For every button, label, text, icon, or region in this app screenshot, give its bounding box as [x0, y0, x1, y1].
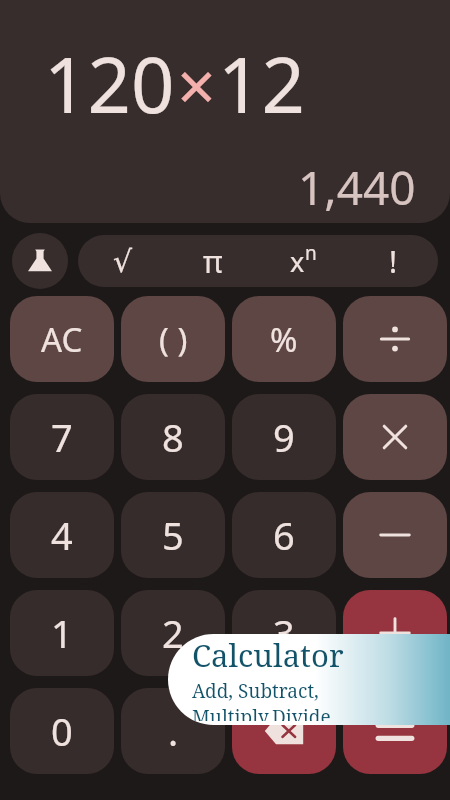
button[interactable]: Decimal point	[121, 688, 225, 774]
staticText: 12	[218, 32, 305, 136]
button[interactable]: 0	[10, 688, 114, 774]
staticText: !	[389, 241, 398, 282]
staticText: 2	[162, 607, 184, 659]
button[interactable]: Percent	[232, 296, 336, 382]
staticText: ( )	[159, 317, 188, 362]
staticText: 0	[51, 705, 73, 757]
button[interactable]: Power	[258, 235, 348, 287]
staticText: π	[203, 241, 223, 282]
button[interactable]: 2	[121, 590, 225, 676]
staticText: 1	[51, 607, 73, 659]
button[interactable]: Divide	[343, 296, 447, 382]
button[interactable]: Factorial	[348, 235, 438, 287]
button[interactable]: Parentheses	[121, 296, 225, 382]
staticText: .	[168, 705, 179, 757]
button[interactable]: Pi	[168, 235, 258, 287]
staticText: 4	[51, 509, 73, 561]
button[interactable]: 6	[232, 492, 336, 578]
staticText: 6	[273, 509, 295, 561]
staticText: 120	[44, 32, 175, 136]
button[interactable]: Multiply	[343, 394, 447, 480]
button[interactable]: 1	[10, 590, 114, 676]
button[interactable]: Backspace	[232, 688, 336, 774]
staticText: 7	[51, 411, 73, 463]
button[interactable]: All clear	[10, 296, 114, 382]
button[interactable]: Add	[343, 590, 447, 676]
button[interactable]: 3	[232, 590, 336, 676]
staticText: AC	[41, 317, 83, 362]
staticText: n	[305, 240, 317, 266]
button[interactable]: Calculator	[168, 634, 450, 725]
button[interactable]: Scientific mode	[12, 233, 68, 289]
staticText: 8	[162, 411, 184, 463]
button[interactable]: 7	[10, 394, 114, 480]
staticText: ×	[177, 38, 216, 131]
staticText: %	[270, 317, 298, 362]
button[interactable]: 8	[121, 394, 225, 480]
staticText: x	[290, 243, 305, 280]
staticText: Add, Subtract, Multiply,Divide	[192, 678, 450, 721]
button[interactable]: Subtract	[343, 492, 447, 578]
staticText: 9	[273, 411, 295, 463]
button[interactable]: 4	[10, 492, 114, 578]
button[interactable]: 9	[232, 394, 336, 480]
staticText: Calculator	[192, 634, 344, 676]
staticText: √	[113, 244, 133, 279]
staticText: 3	[273, 607, 295, 659]
button[interactable]: 5	[121, 492, 225, 578]
staticText: 1,440	[298, 156, 416, 219]
button[interactable]: Equals	[343, 688, 447, 774]
staticText: 5	[162, 509, 184, 561]
button[interactable]: Square root	[78, 235, 168, 287]
